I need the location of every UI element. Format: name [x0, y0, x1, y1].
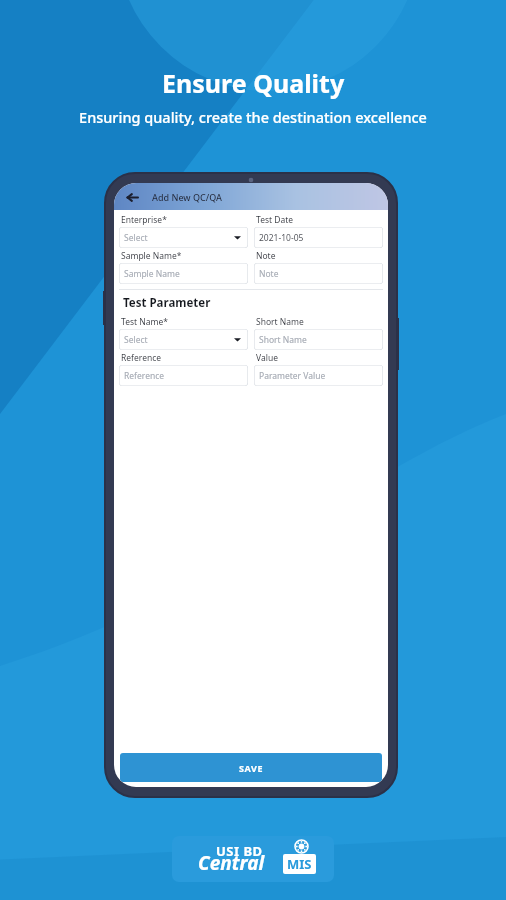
staticText: SAVE [239, 762, 264, 774]
staticText: Note [259, 268, 279, 280]
button[interactable]: Select [119, 227, 248, 248]
button[interactable]: Reference [119, 365, 248, 386]
staticText: Ensuring quality, create the destination… [79, 107, 427, 127]
button[interactable]: Back [122, 187, 142, 207]
staticText: Select [124, 232, 148, 244]
button[interactable]: SAVE [120, 753, 382, 782]
staticText: Reference [124, 370, 165, 382]
staticText: Add New QC/QA [152, 191, 222, 203]
staticText: Note [256, 250, 276, 262]
button[interactable]: Sample Name [119, 263, 248, 284]
staticText: Central [198, 850, 265, 876]
staticText: Test Date [256, 214, 294, 226]
staticText: USI BD [216, 842, 263, 860]
staticText: Sample Name [124, 268, 180, 280]
button[interactable]: USI BD Central MIS [172, 836, 334, 882]
staticText: MIS [287, 855, 312, 873]
staticText: Sample Name* [121, 250, 182, 262]
staticText: Select [124, 334, 148, 346]
staticText: Short Name [256, 316, 304, 328]
staticText: 2021-10-05 [259, 232, 304, 244]
button[interactable]: Select [119, 329, 248, 350]
button[interactable]: 2021-10-05 [254, 227, 383, 248]
staticText: Reference [121, 352, 162, 364]
button[interactable]: Short Name [254, 329, 383, 350]
button[interactable]: Parameter Value [254, 365, 383, 386]
staticText: Parameter Value [259, 370, 326, 382]
staticText: Test Parameter [123, 295, 211, 311]
staticText: Enterprise* [121, 214, 167, 226]
staticText: Test Name* [121, 316, 168, 328]
staticText: Short Name [259, 334, 307, 346]
button[interactable]: Note [254, 263, 383, 284]
staticText: Value [256, 352, 278, 364]
staticText: Ensure Quality [162, 66, 345, 100]
